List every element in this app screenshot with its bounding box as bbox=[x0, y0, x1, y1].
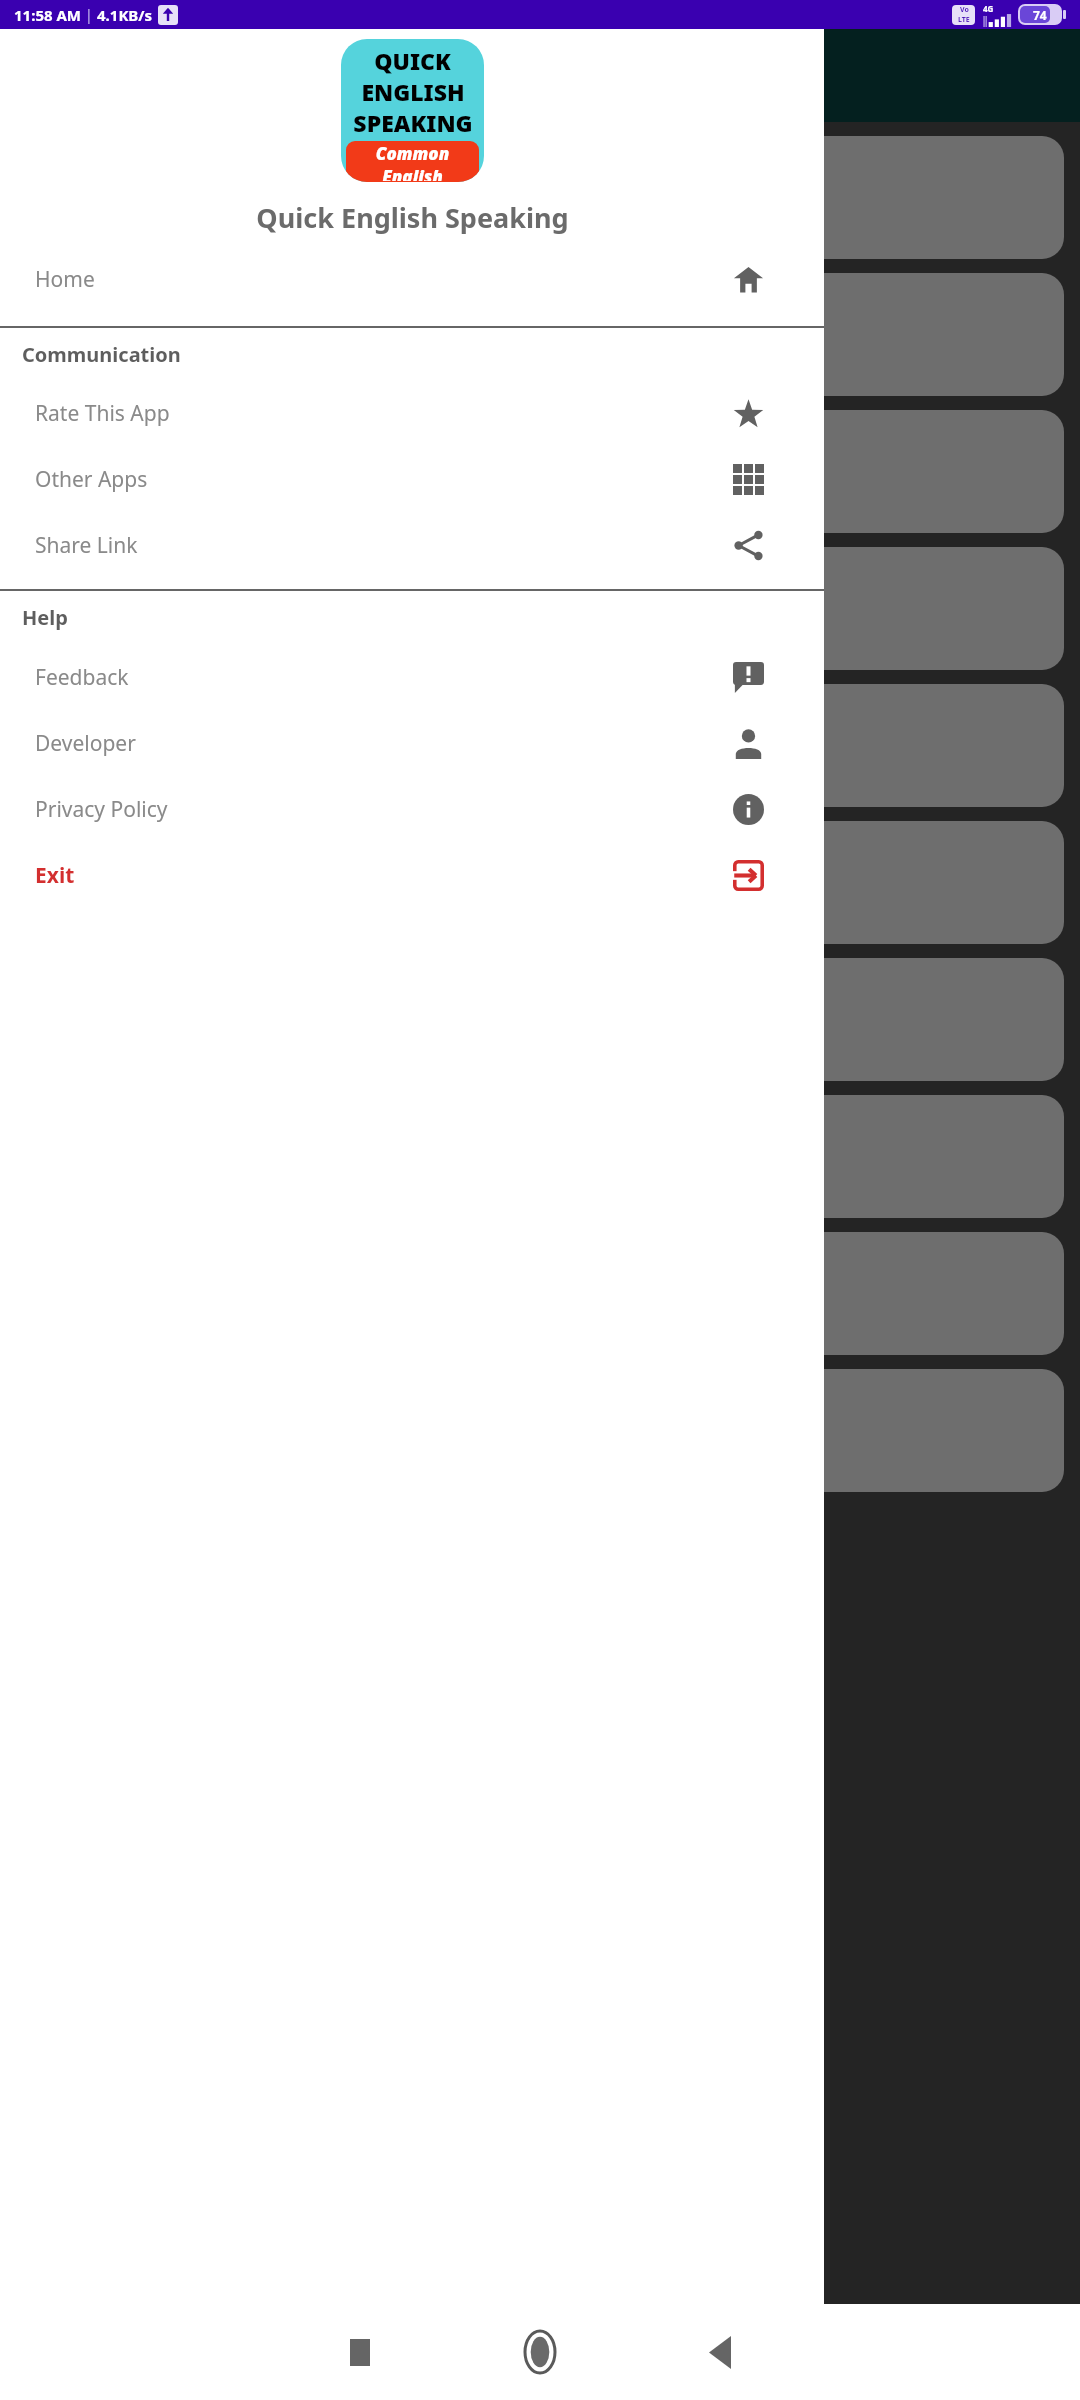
button[interactable]: Lesson 05 bbox=[16, 684, 1064, 807]
staticText: Feedback bbox=[35, 663, 733, 692]
button[interactable]: Lesson 10 bbox=[16, 1369, 1064, 1492]
button[interactable]: Lesson 07 bbox=[16, 958, 1064, 1081]
button[interactable]: Rate This App bbox=[0, 381, 824, 445]
other: Feedback bbox=[733, 662, 764, 693]
other: Other Apps bbox=[733, 464, 764, 495]
staticText: Other Apps bbox=[35, 465, 733, 494]
staticText: Help bbox=[22, 604, 68, 631]
staticText: Quick English Speaking bbox=[256, 199, 569, 236]
other: Rate This App bbox=[733, 398, 764, 429]
staticText: 11:58 AM bbox=[14, 5, 81, 25]
button[interactable]: Lesson 03 bbox=[16, 410, 1064, 533]
staticText: LTE bbox=[958, 15, 970, 25]
staticText: QUICK bbox=[374, 45, 451, 76]
staticText: Lesson 03 bbox=[56, 445, 250, 499]
other: Home bbox=[733, 264, 764, 295]
button[interactable]: Share Link bbox=[0, 513, 824, 577]
other: Privacy Policy bbox=[733, 794, 764, 825]
button[interactable]: Lesson 04 bbox=[16, 547, 1064, 670]
other: Developer bbox=[733, 728, 764, 759]
button[interactable]: Lesson 06 bbox=[16, 821, 1064, 944]
staticText: 74 bbox=[1033, 7, 1047, 23]
staticText: 4G bbox=[983, 3, 994, 14]
button[interactable]: Lesson 08 bbox=[16, 1095, 1064, 1218]
button[interactable]: Lesson 09 bbox=[16, 1232, 1064, 1355]
other: Exit bbox=[733, 860, 764, 891]
staticText: Rate This App bbox=[35, 399, 733, 428]
other: Share Link bbox=[733, 530, 764, 561]
staticText: Privacy Policy bbox=[35, 795, 733, 824]
button[interactable]: Other Apps bbox=[0, 447, 824, 511]
button[interactable]: Home bbox=[0, 248, 824, 310]
button[interactable]: Lesson 01 bbox=[16, 136, 1064, 259]
button[interactable]: Exit bbox=[0, 843, 824, 907]
staticText: ENGLISH bbox=[361, 76, 465, 107]
button[interactable]: Feedback bbox=[0, 645, 824, 709]
staticText: Lesson 06 bbox=[56, 856, 250, 910]
staticText: Developer bbox=[35, 729, 733, 758]
staticText: Common English bbox=[346, 142, 479, 181]
staticText: 4.1KB/s bbox=[97, 5, 153, 25]
staticText: Home bbox=[35, 265, 733, 294]
button[interactable]: Home bbox=[450, 2304, 630, 2400]
button[interactable]: Developer bbox=[0, 711, 824, 775]
staticText: Lesson 04 bbox=[56, 582, 250, 636]
staticText: Lesson 02 bbox=[56, 308, 250, 362]
staticText: Vo bbox=[960, 5, 969, 15]
staticText: SPEAKING bbox=[353, 107, 473, 138]
button[interactable]: Privacy Policy bbox=[0, 777, 824, 841]
button[interactable]: Recent apps bbox=[270, 2304, 450, 2400]
staticText: Lesson 05 bbox=[56, 719, 250, 773]
staticText: Exit bbox=[35, 861, 733, 890]
staticText: QUICK ENGLISH SPEAKING bbox=[150, 55, 545, 96]
button[interactable]: Lesson 02 bbox=[16, 273, 1064, 396]
button[interactable]: Back bbox=[630, 2304, 810, 2400]
staticText: Communication bbox=[22, 341, 181, 368]
staticText: Share Link bbox=[35, 531, 733, 560]
staticText: | bbox=[85, 5, 93, 24]
